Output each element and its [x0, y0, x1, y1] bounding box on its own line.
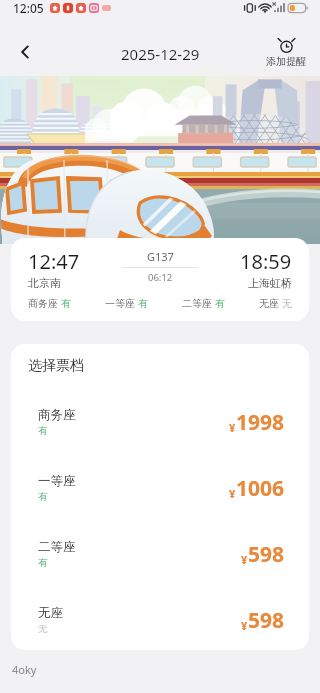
staticText: 添加提醒 [266, 55, 306, 68]
staticText: 1998 [236, 408, 285, 437]
staticText: 598 [248, 540, 285, 569]
staticText: 18:59 [240, 248, 292, 275]
button[interactable]: 二等座 [11, 521, 309, 587]
staticText: 4oky [12, 662, 37, 677]
staticText: 一等座 [105, 297, 135, 310]
staticText: 12:05 [13, 0, 44, 16]
staticText: 商务座 [28, 297, 58, 310]
staticText: 无 [282, 297, 292, 310]
staticText: ¥ [229, 486, 236, 501]
staticText: 无座 [38, 605, 63, 621]
staticText: ¥ [241, 618, 248, 633]
button[interactable]: 商务座 [11, 389, 309, 455]
staticText: 无座 [259, 297, 279, 310]
staticText: 有 [38, 557, 48, 569]
staticText: 选择票档 [28, 357, 84, 375]
staticText: ¥ [241, 552, 248, 567]
staticText: 06:12 [148, 271, 173, 284]
staticText: 北京南 [28, 276, 61, 290]
staticText: 有 [38, 425, 48, 437]
staticText: 有 [61, 297, 71, 310]
staticText: 有 [38, 491, 48, 503]
staticText: G137 [147, 249, 174, 264]
staticText: 有 [215, 297, 225, 310]
button[interactable]: Back [6, 33, 44, 71]
staticText: 有 [138, 297, 148, 310]
staticText: 商务座 [38, 407, 76, 423]
button[interactable]: 无座 [11, 587, 309, 650]
button[interactable]: 一等座 [11, 455, 309, 521]
staticText: 2025-12-29 [121, 44, 200, 64]
staticText: ¥ [229, 420, 236, 435]
button[interactable]: 添加提醒 [264, 35, 308, 70]
staticText: 一等座 [38, 473, 76, 489]
staticText: 上海虹桥 [248, 276, 292, 290]
staticText: 12:47 [28, 248, 80, 275]
staticText: 无 [38, 623, 48, 635]
staticText: 二等座 [182, 297, 212, 310]
staticText: 1006 [236, 474, 285, 503]
staticText: 598 [248, 606, 285, 635]
staticText: 二等座 [38, 539, 76, 555]
